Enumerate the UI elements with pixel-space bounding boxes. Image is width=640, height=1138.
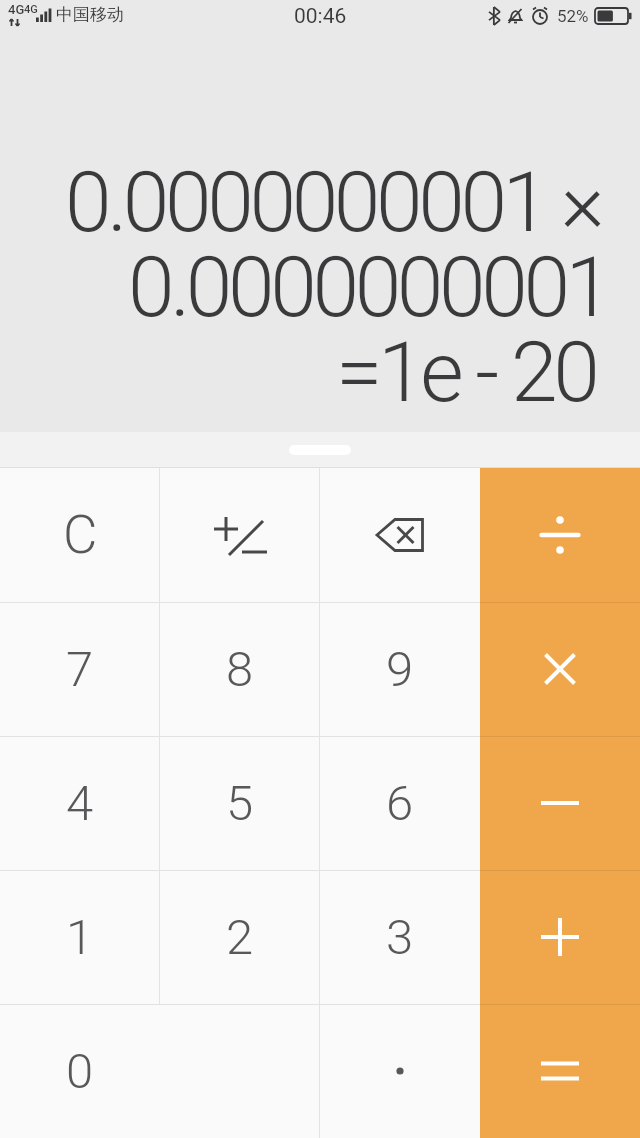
staticText: 9 [386,641,414,698]
staticText: 3 [386,909,414,966]
staticText: 0 [66,1043,94,1100]
button[interactable] [480,870,640,1004]
staticText: C [63,504,98,566]
staticText: 4 [66,775,94,832]
staticText: 8 [226,641,254,698]
button[interactable] [160,468,320,602]
button[interactable]: 5 [160,736,320,870]
button[interactable]: 8 [160,602,320,736]
button[interactable]: 9 [320,602,480,736]
button[interactable] [480,1004,640,1138]
button[interactable]: 4 [0,736,160,870]
staticText: 0.0000000001 × [65,153,601,251]
button[interactable] [320,1004,480,1138]
button[interactable] [320,468,480,602]
staticText: 4G [8,2,25,17]
button[interactable] [480,736,640,870]
staticText: 00:46 [294,4,347,29]
button[interactable]: 7 [0,602,160,736]
button[interactable]: 2 [160,870,320,1004]
button[interactable] [480,602,640,736]
staticText: 0.0000000001 [128,238,608,336]
button[interactable]: C [0,468,160,602]
button[interactable]: 1 [0,870,160,1004]
button[interactable] [480,468,640,602]
button[interactable]: 3 [320,870,480,1004]
staticText: 7 [66,641,94,698]
staticText: 52% [557,6,589,26]
staticText: 5 [226,775,254,832]
staticText: 4G [24,3,38,16]
staticText: 2 [226,909,254,966]
staticText: 1 [66,909,94,966]
button[interactable]: 6 [320,736,480,870]
staticText: 中国移动 [56,4,124,25]
staticText: 6 [386,775,414,832]
button[interactable]: 0 [0,1004,320,1138]
staticText: =1e - 20 [336,323,596,421]
